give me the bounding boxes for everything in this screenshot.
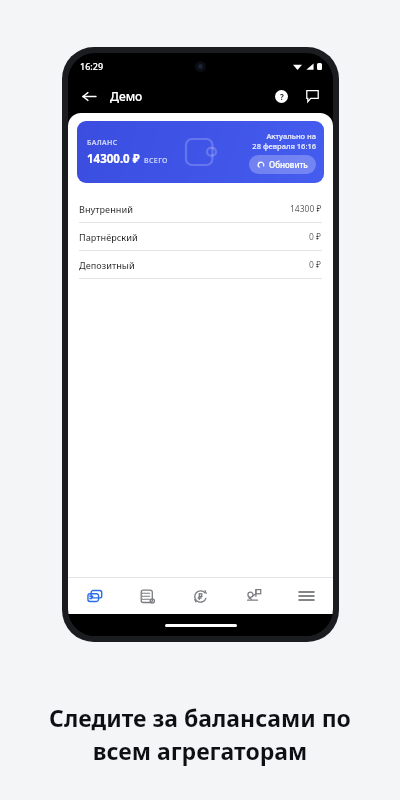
staticText: ВСЕГО <box>144 156 168 166</box>
staticText: Партнёрский <box>79 231 138 243</box>
staticText: 0 ₽ <box>309 259 322 271</box>
staticText: БАЛАНС <box>87 138 118 148</box>
button[interactable]: Помощь <box>270 85 292 107</box>
staticText: Актуально на <box>266 131 316 141</box>
button[interactable]: Депозитный <box>68 251 333 279</box>
staticText: Внутренний <box>79 203 133 215</box>
button[interactable]: Чат <box>301 85 323 107</box>
staticText: Следите за балансами по <box>14 702 386 733</box>
button[interactable]: Обмен <box>174 578 227 614</box>
button[interactable]: Обновить <box>249 155 316 174</box>
button[interactable]: Выплаты <box>227 578 280 614</box>
staticText: 14300.0 ₽ <box>87 151 140 167</box>
button[interactable]: БАЛАНС <box>77 121 324 183</box>
button[interactable]: Заявки <box>121 578 174 614</box>
staticText: Обновить <box>269 159 308 170</box>
button[interactable]: Кошелёк <box>68 578 121 614</box>
staticText: 16:29 <box>80 60 104 72</box>
staticText: 0 ₽ <box>309 231 322 243</box>
staticText: Демо <box>110 88 143 104</box>
staticText: ? <box>280 91 284 102</box>
button[interactable]: Внутренний <box>68 195 333 223</box>
staticText: всем агрегаторам <box>14 735 386 766</box>
staticText: 14300 ₽ <box>290 203 322 215</box>
button[interactable]: Партнёрский <box>68 223 333 251</box>
staticText: Депозитный <box>79 259 135 271</box>
staticText: 28 февраля 16:16 <box>252 141 316 151</box>
button[interactable]: Назад <box>78 85 100 107</box>
button[interactable]: Меню <box>280 578 333 614</box>
